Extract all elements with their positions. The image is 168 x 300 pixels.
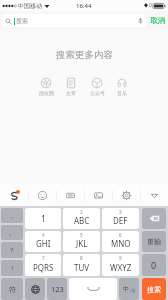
staticText: 公众号 [90, 90, 105, 96]
button[interactable]: Voice input [57, 184, 84, 206]
button[interactable]: 7 [25, 254, 61, 276]
button[interactable]: Hide keyboard [141, 184, 168, 206]
button[interactable]: Input method [0, 184, 28, 206]
button[interactable]: 重输 [142, 231, 166, 252]
staticText: 8 [80, 255, 83, 261]
button[interactable]: 0 [142, 254, 166, 276]
button[interactable]: ！ [1, 260, 23, 276]
button[interactable]: Backspace [142, 208, 166, 229]
staticText: ， [9, 212, 15, 220]
button[interactable]: 123 [47, 278, 67, 300]
button[interactable]: Image [85, 184, 112, 206]
button[interactable]: ， [1, 208, 23, 223]
staticText: 3 [119, 209, 122, 215]
button[interactable]: ？ [1, 242, 23, 258]
staticText: GHI [36, 238, 51, 249]
button[interactable]: 6 [102, 231, 139, 252]
staticText: ？ [9, 246, 15, 254]
staticText: 搜索更多内容 [56, 49, 113, 61]
staticText: 中 [123, 285, 130, 293]
button[interactable]: 8 [63, 254, 100, 276]
button[interactable]: 。 [1, 225, 23, 240]
staticText: 16:44 [76, 2, 92, 10]
staticText: 朋友圈 [39, 90, 54, 96]
button[interactable]: Settings [113, 184, 140, 206]
staticText: PQRS [33, 262, 54, 273]
button[interactable]: 3 [102, 208, 139, 229]
staticText: 9 [119, 255, 122, 261]
button[interactable]: 1 [25, 208, 61, 229]
button[interactable]: 2 [63, 208, 100, 229]
staticText: 4 [42, 232, 45, 238]
staticText: 搜索 [16, 17, 28, 25]
button[interactable]: 取消 [148, 14, 167, 27]
button[interactable]: 5 [63, 231, 100, 252]
staticText: 123 [51, 284, 64, 294]
button[interactable]: 4 [25, 231, 61, 252]
staticText: MNO [111, 238, 131, 249]
staticText: DEF [113, 215, 128, 226]
staticText: 7 [42, 255, 45, 261]
staticText: 5 [80, 232, 83, 238]
staticText: 。 [9, 229, 15, 237]
staticText: 音乐 [117, 90, 127, 96]
button[interactable]: 符 [1, 278, 23, 300]
staticText: 0 [149, 2, 152, 9]
staticText: ！ [9, 264, 15, 272]
button[interactable]: Space [69, 278, 117, 300]
button[interactable]: 朋友圈 [37, 77, 55, 96]
button[interactable]: 公众号 [88, 77, 106, 96]
button[interactable]: 搜索 [142, 278, 166, 300]
staticText: 6 [119, 232, 122, 238]
staticText: 搜索 [147, 285, 161, 294]
staticText: 2 [80, 209, 83, 215]
button[interactable]: 文章 [62, 77, 80, 96]
staticText: JKL [76, 238, 88, 249]
staticText: 文章 [66, 90, 76, 96]
staticText: 中国移动 [18, 2, 42, 10]
staticText: 重输 [147, 237, 161, 246]
staticText: ABC [74, 215, 90, 226]
button[interactable]: 音乐 [113, 77, 131, 96]
staticText: TUV [74, 262, 90, 273]
staticText: 1 [41, 213, 46, 225]
button[interactable]: 9 [102, 254, 139, 276]
staticText: 符 [9, 285, 16, 294]
button[interactable]: Switch language [25, 278, 45, 300]
staticText: /英 [130, 288, 136, 293]
staticText: WXYZ [110, 262, 132, 273]
button[interactable]: 搜索 [2, 14, 146, 27]
button[interactable]: Emoji [29, 184, 56, 206]
button[interactable]: Chinese English toggle [119, 278, 139, 300]
staticText: 取消 [150, 16, 165, 25]
staticText: 0 [151, 259, 157, 271]
